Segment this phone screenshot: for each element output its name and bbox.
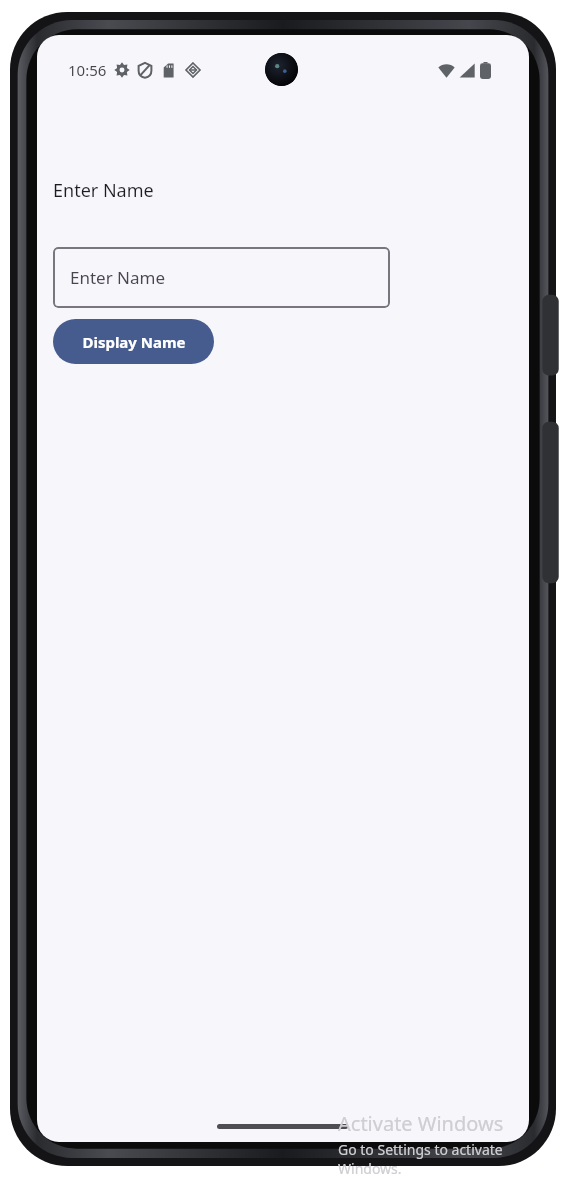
staticText: Enter Name — [70, 266, 166, 289]
staticText: Go to Settings to activate Windows. — [338, 1140, 565, 1178]
staticText: 10:56 — [68, 60, 107, 80]
staticText: Display Name — [82, 332, 186, 352]
staticText: Activate Windows — [338, 1110, 504, 1137]
staticText: Enter Name — [53, 178, 154, 203]
button[interactable]: Enter Name — [53, 247, 390, 308]
button[interactable]: Display Name — [53, 319, 214, 364]
